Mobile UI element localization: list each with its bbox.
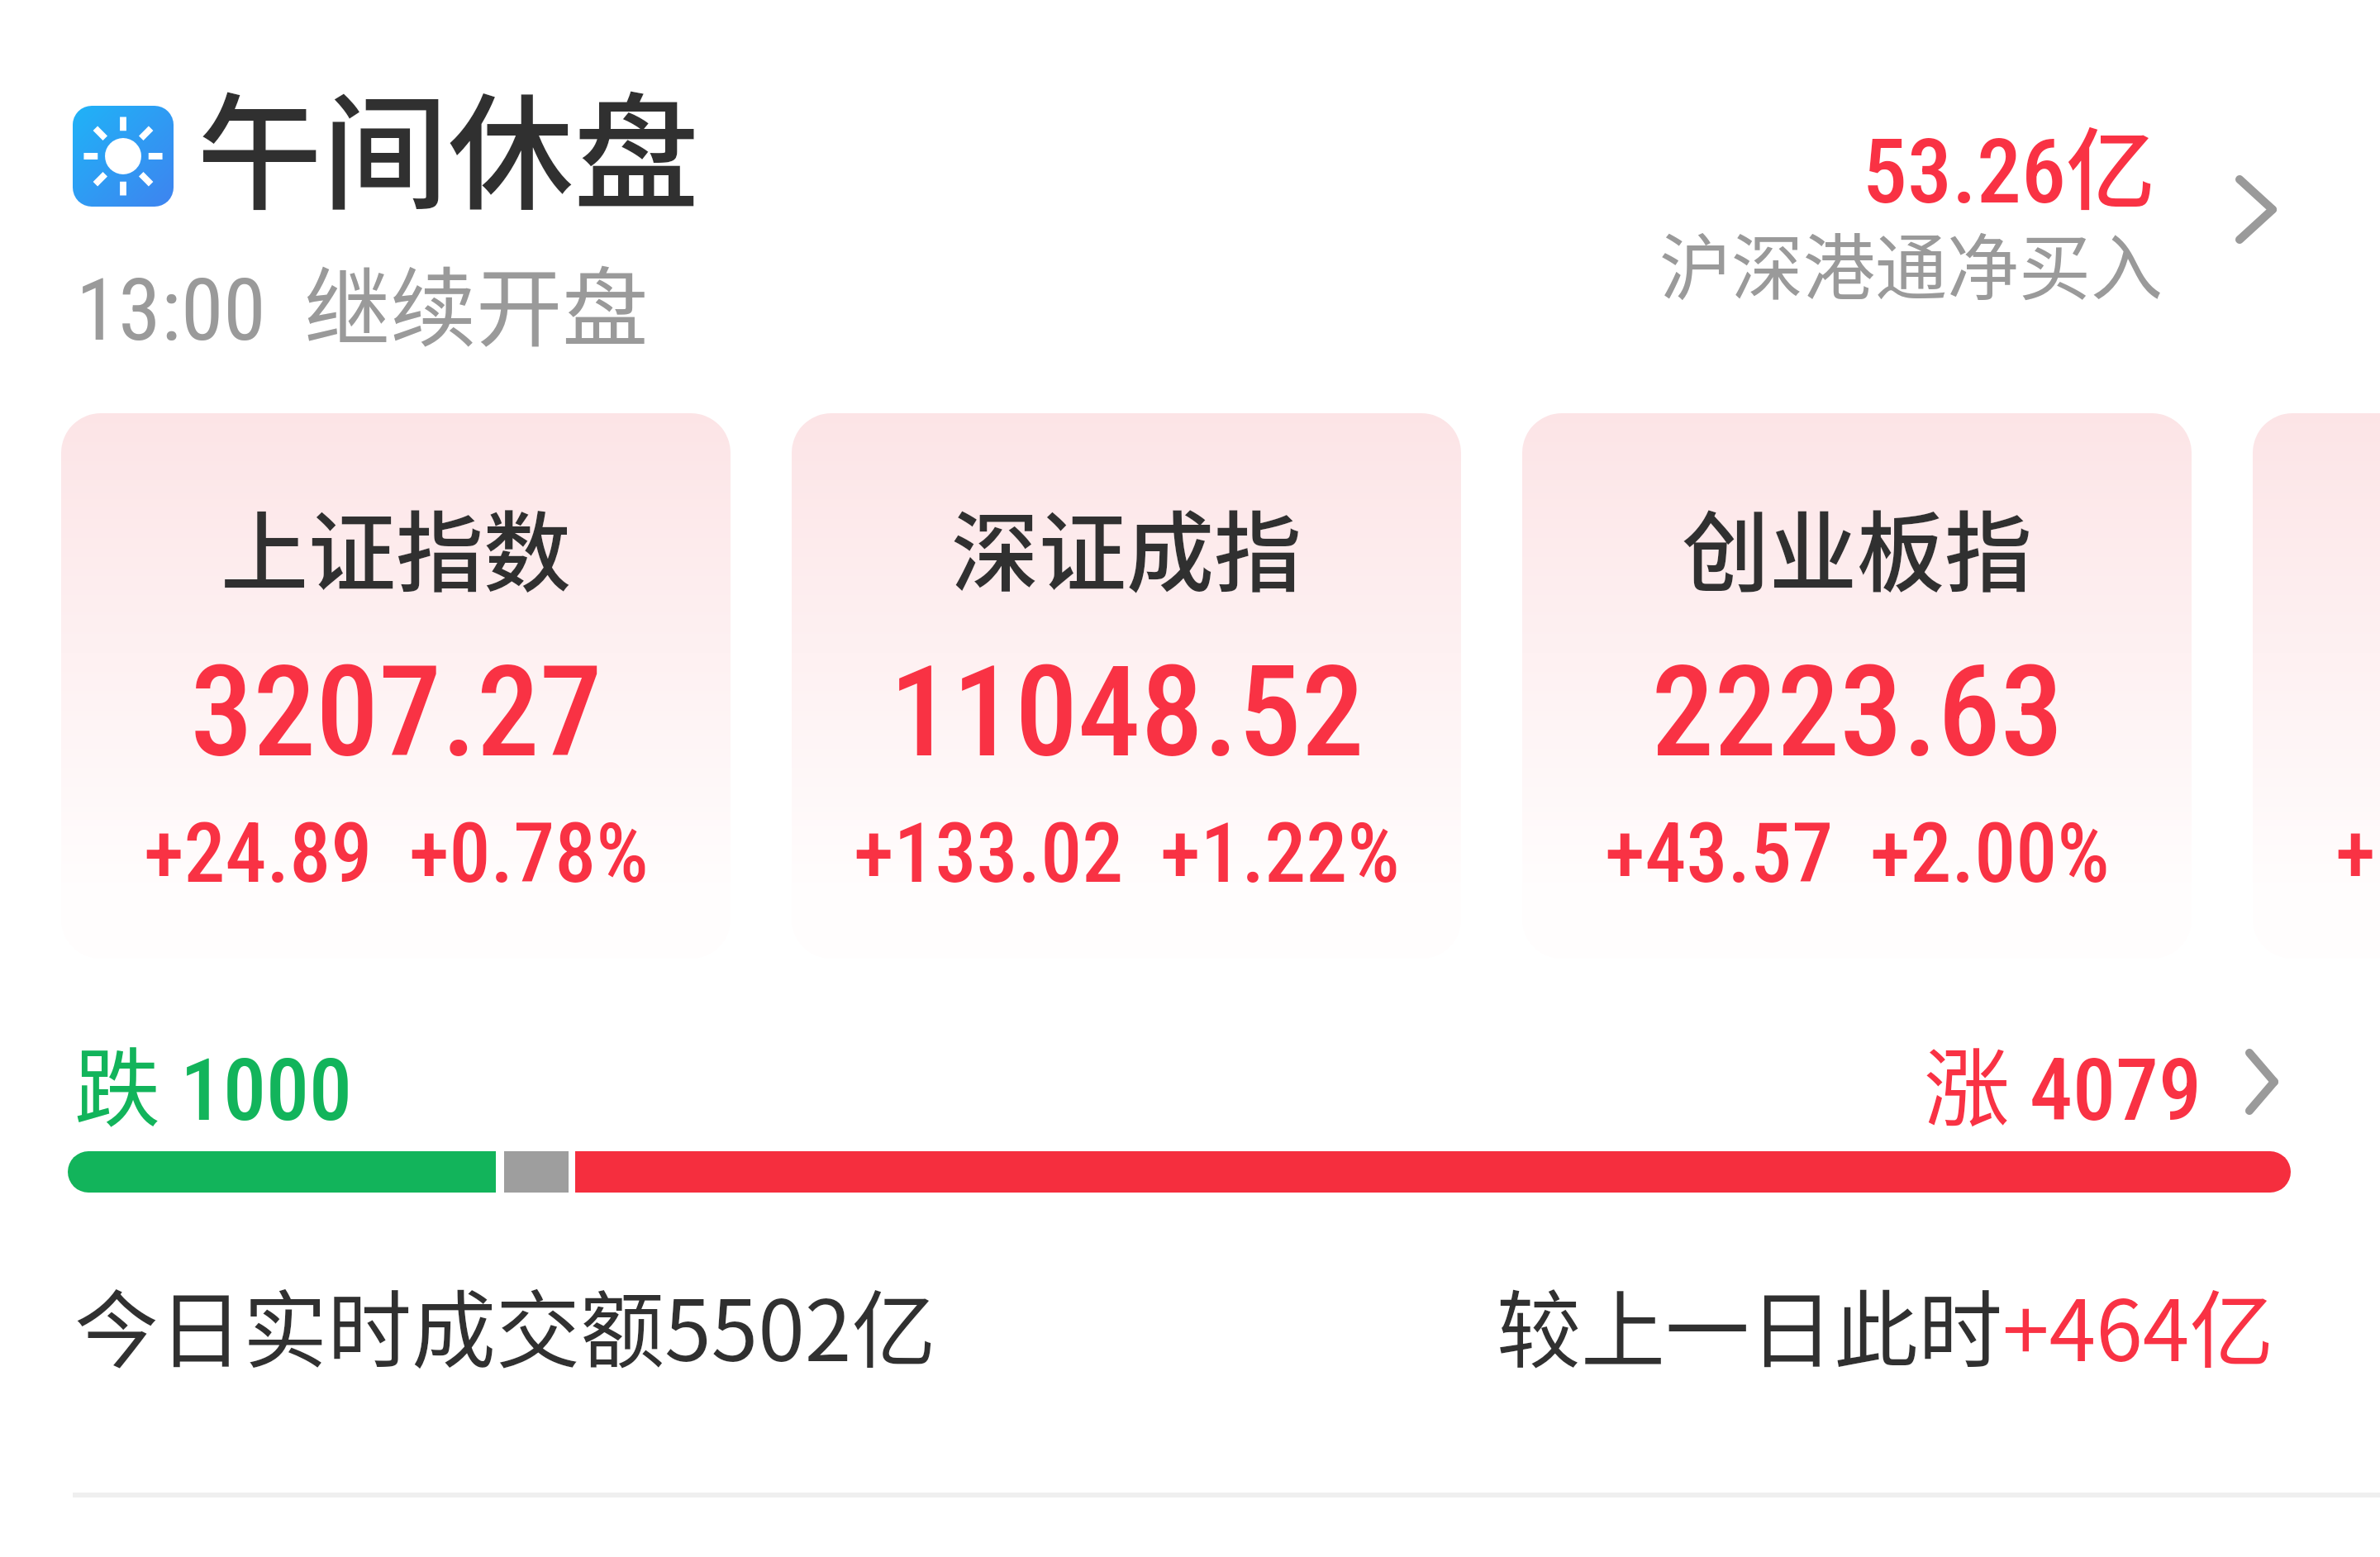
button[interactable]: 深证成指 — [792, 413, 1461, 959]
staticText: 2223.63 — [1651, 639, 2063, 786]
staticText: 较上一日此时+464亿 — [1497, 1264, 2274, 1386]
staticText: 午间休盘 — [197, 54, 699, 236]
other: 涨跌家数详情 — [2245, 1049, 2278, 1115]
other: 沪深港通净买入详情 — [2235, 175, 2277, 244]
staticText: 11048.52 — [889, 639, 1364, 786]
staticText: +1.22% — [1160, 805, 1400, 902]
staticText: +18.22 — [2335, 805, 2380, 902]
staticText: 今日实时成交额5502亿 — [74, 1264, 936, 1386]
staticText: 沪深港通净买入 — [1659, 211, 2163, 315]
staticText: +2.00% — [1870, 805, 2110, 902]
staticText: 跌 1000 — [74, 1020, 352, 1127]
staticText: +133.02 — [854, 805, 1124, 902]
staticText: 创业板指 — [1682, 483, 2032, 609]
staticText: +0.78% — [409, 805, 649, 902]
staticText: +43.57 — [1605, 805, 1834, 902]
button[interactable]: 午间休盘 — [0, 0, 2380, 388]
button[interactable]: 创业板指 — [1522, 413, 2192, 959]
button[interactable]: 跌 1000 — [74, 1020, 2286, 1127]
staticText: 3207.27 — [190, 639, 602, 786]
button[interactable]: 科创50 — [2253, 413, 2380, 959]
staticText: 涨 4079 — [1924, 1020, 2201, 1127]
staticText: 深证成指 — [951, 483, 1302, 609]
staticText: +24.89 — [144, 805, 373, 902]
staticText: 上证指数 — [221, 483, 571, 609]
staticText: 13:00 继续开盘 — [76, 240, 649, 364]
button[interactable]: 上证指数 — [61, 413, 731, 959]
staticText: 53.26亿 — [1863, 99, 2156, 228]
